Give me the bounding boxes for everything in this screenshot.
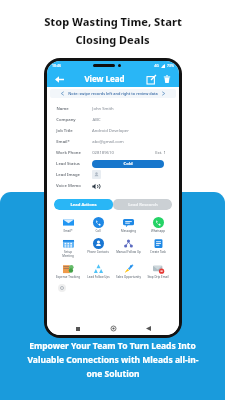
staticText: Expense Tracking [56,275,80,279]
staticText: Work Phone [56,150,81,156]
button[interactable]: Create Task [143,237,173,255]
button[interactable]: Manual Follow Up [113,237,143,255]
button[interactable]: Phone Contacts [83,237,113,255]
staticText: 028189610 [92,150,114,156]
button[interactable]: Email* [56,136,170,147]
staticText: Sales Opportunity [116,275,141,279]
staticText: Valuable Connections with Mleads all-in- [27,354,199,366]
button[interactable]: Stop Drip Email [143,262,173,280]
button[interactable]: Expense Tracking [53,262,83,280]
staticText: Lead Status [56,161,80,167]
staticText: Manual Follow Up [116,250,141,254]
staticText: Create Task [150,250,166,254]
button[interactable]: Email* [53,216,83,234]
staticText: Name [56,106,69,112]
button[interactable]: More [58,284,66,292]
staticText: 73% [167,63,174,68]
staticText: 4G [154,63,159,68]
button[interactable]: Call [83,216,113,234]
staticText: Email* [63,229,73,233]
staticText: Lead Actions [70,202,97,208]
button[interactable]: Lead Actions [54,199,113,210]
staticText: Messaging [121,229,136,233]
staticText: Company [56,117,76,123]
staticText: View Lead [84,73,125,84]
staticText: Phone Contacts [87,250,109,254]
staticText: Lead Image [56,172,80,178]
button[interactable]: Cold [92,160,164,168]
staticText: Email* [56,139,70,145]
staticText: Note: swipe records left and right to re… [68,91,158,96]
staticText: Setup Meeting [62,250,74,258]
button[interactable]: Home [108,323,119,334]
button[interactable]: Lead Follow Ups [83,262,113,280]
button[interactable]: Voice Memo [56,180,170,191]
button[interactable]: Lead Status [56,158,170,169]
staticText: ABC [92,117,101,123]
staticText: Stop Drip Email [147,275,169,279]
button[interactable]: Name [56,103,170,114]
button[interactable]: Messaging [113,216,143,234]
staticText: abc@gmail.com [92,139,124,145]
button[interactable]: Edit [145,73,157,85]
staticText: Stop Wasting Time, Start [44,14,182,29]
staticText: Call [95,229,101,233]
staticText: Lead Follow Ups [87,275,110,279]
staticText: Closing Deals [75,32,150,47]
button[interactable]: Company [56,114,170,125]
staticText: Lead Research [128,202,158,208]
staticText: John Smith [92,106,114,112]
staticText: one Solution [86,368,140,380]
button[interactable]: Setup Meeting [53,237,83,259]
button[interactable]: Back [143,323,154,334]
staticText: Whatsapp [151,229,165,233]
button[interactable]: Whatsapp [143,216,173,234]
staticText: Android Developer [92,128,129,134]
staticText: Ext. 1 [155,150,166,156]
button[interactable]: Lead Image [56,169,170,180]
button[interactable]: Lead Research [113,199,172,210]
button[interactable]: Recents [72,323,83,334]
staticText: Cold [123,161,133,167]
staticText: Empower Your Team To Turn Leads Into [29,340,196,352]
button[interactable]: Sales Opportunity [113,262,143,280]
staticText: 10:46 [52,63,61,68]
staticText: Job Title [56,128,73,134]
button[interactable]: Work Phone [56,147,170,158]
button[interactable]: Back [53,73,65,85]
button[interactable]: Delete [161,73,173,85]
button[interactable]: Job Title [56,125,170,136]
staticText: Voice Memo [56,183,81,189]
button[interactable]: Play voice memo [92,181,102,191]
